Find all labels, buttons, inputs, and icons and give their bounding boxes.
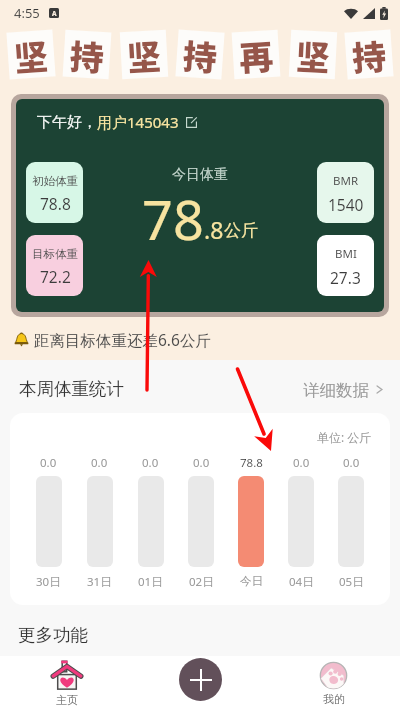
button[interactable]: 78.8 — [226, 455, 276, 588]
staticText: 坚 — [126, 30, 162, 79]
button[interactable]: 主页 — [0, 656, 134, 710]
button[interactable]: 距离目标体重还差6.6公斤 — [14, 327, 400, 351]
staticText: 坚 — [295, 30, 331, 79]
staticText: 02日 — [189, 574, 214, 590]
staticText: 下午好， — [37, 113, 97, 132]
button[interactable]: 初始体重 — [26, 162, 83, 223]
staticText: 05日 — [339, 574, 364, 590]
button[interactable]: 目标体重 — [26, 235, 83, 296]
button[interactable]: BMI — [317, 235, 374, 296]
staticText: 04日 — [289, 574, 314, 590]
button[interactable]: 下午好， — [16, 99, 384, 312]
staticText: 0.0 — [91, 455, 108, 471]
staticText: 78 — [142, 182, 204, 256]
staticText: 0.0 — [293, 455, 310, 471]
staticText: 4:55 — [14, 4, 40, 22]
button[interactable]: 0.0 — [23, 455, 74, 590]
staticText: 详细数据 — [303, 380, 369, 398]
button[interactable]: 0.0 — [276, 455, 326, 590]
button[interactable]: Edit nickname — [186, 117, 197, 128]
staticText: 30日 — [36, 574, 61, 590]
staticText: 本周体重统计 — [19, 378, 124, 400]
staticText: 更多功能 — [18, 624, 88, 646]
button[interactable]: 0.0 — [74, 455, 125, 590]
staticText: 27.3 — [330, 267, 361, 288]
staticText: 距离目标体重还差6.6公斤 — [34, 329, 211, 350]
staticText: 坚 — [12, 30, 50, 79]
staticText: 公斤 — [224, 220, 258, 241]
button[interactable]: 详细数据 — [303, 378, 385, 400]
staticText: 1540 — [328, 194, 364, 215]
staticText: BMR — [333, 173, 359, 189]
staticText: .8 — [204, 214, 224, 245]
staticText: 用户145043 — [97, 112, 179, 132]
staticText: 持 — [181, 30, 219, 79]
staticText: 目标体重 — [32, 247, 78, 261]
staticText: 72.2 — [40, 266, 71, 287]
staticText: 31日 — [87, 574, 112, 590]
staticText: 初始体重 — [32, 174, 78, 188]
staticText: 持 — [69, 30, 105, 79]
staticText: 0.0 — [40, 455, 57, 471]
button[interactable]: Add record — [179, 658, 222, 701]
staticText: 今日体重 — [172, 166, 228, 184]
staticText: 0.0 — [343, 455, 360, 471]
staticText: 0.0 — [193, 455, 210, 471]
button[interactable]: 0.0 — [176, 455, 226, 590]
button[interactable]: 0.0 — [125, 455, 176, 590]
staticText: 我的 — [323, 692, 345, 706]
staticText: BMI — [335, 246, 357, 262]
button[interactable]: BMR — [317, 162, 374, 223]
staticText: 持 — [350, 30, 388, 79]
staticText: 主页 — [56, 693, 78, 707]
staticText: 今日 — [240, 574, 263, 588]
staticText: 78.8 — [40, 193, 71, 214]
staticText: 01日 — [138, 574, 163, 590]
staticText: 78.8 — [240, 455, 263, 471]
staticText: 0.0 — [142, 455, 159, 471]
staticText: 单位: 公斤 — [317, 429, 372, 445]
staticText: A — [52, 9, 57, 18]
staticText: 再 — [238, 30, 274, 79]
button[interactable]: 我的 — [267, 656, 400, 710]
button[interactable]: 0.0 — [326, 455, 376, 590]
